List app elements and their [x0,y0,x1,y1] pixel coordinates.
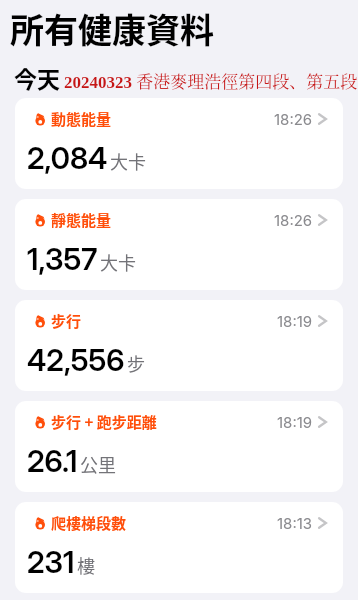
staticText: 2,084 [27,140,108,176]
staticText: 18:26 [274,211,313,229]
staticText: 動態能量 [51,108,112,130]
staticText: 所有健康資料 [10,4,214,53]
button[interactable]: 動態能量 [15,98,343,189]
staticText: 20240323 香港麥理浩徑第四段、第五段 [64,68,358,92]
staticText: 42,556 [27,342,125,378]
staticText: 步行 [51,310,82,332]
staticText: 步行 + 跑步距離 [51,411,157,433]
staticText: 爬樓梯段數 [51,512,127,534]
button[interactable]: 爬樓梯段數 [15,502,343,593]
staticText: 1,357 [27,241,98,277]
staticText: 步 [127,350,145,376]
button[interactable]: 靜態能量 [15,199,343,290]
staticText: 18:13 [277,514,313,532]
staticText: 今天 [14,61,60,94]
staticText: 18:19 [277,413,313,431]
staticText: 18:26 [274,110,313,128]
staticText: 大卡 [100,249,136,275]
staticText: 樓 [77,552,95,578]
staticText: 26.1 [27,443,78,479]
staticText: 大卡 [110,148,146,174]
staticText: 公里 [80,451,116,477]
button[interactable]: 步行 + 跑步距離 [15,401,343,492]
staticText: 18:19 [277,312,313,330]
button[interactable]: 步行 [15,300,343,391]
staticText: 靜態能量 [51,209,112,231]
staticText: 231 [27,544,75,580]
